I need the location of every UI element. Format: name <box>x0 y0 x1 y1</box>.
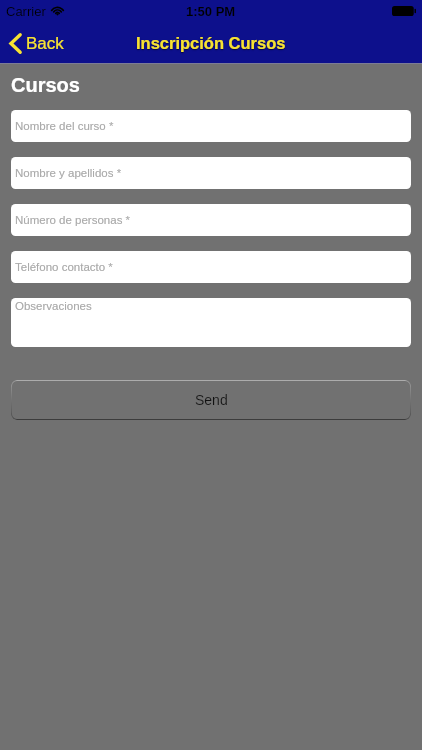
staticText: Teléfono contacto * <box>15 261 113 274</box>
staticText: Inscripción Cursos <box>136 34 286 52</box>
staticText: Send <box>195 392 228 408</box>
staticText: Nombre y apellidos * <box>15 167 122 180</box>
staticText: Cursos <box>11 74 80 96</box>
staticText: Back <box>26 34 64 53</box>
button[interactable]: Nombre del curso * <box>11 110 411 142</box>
button[interactable]: Back <box>0 30 74 57</box>
button[interactable]: Teléfono contacto * <box>11 251 411 283</box>
staticText: 1:50 PM <box>186 4 236 19</box>
other: Battery <box>392 6 416 16</box>
button[interactable]: Número de personas * <box>11 204 411 236</box>
button[interactable]: Observaciones <box>11 298 411 347</box>
button[interactable]: Nombre y apellidos * <box>11 157 411 189</box>
other: Wi-Fi <box>51 5 64 15</box>
staticText: Número de personas * <box>15 214 131 227</box>
staticText: Observaciones <box>15 300 92 313</box>
button[interactable]: Send <box>11 380 411 420</box>
staticText: Nombre del curso * <box>15 120 114 133</box>
staticText: Carrier <box>6 4 46 19</box>
